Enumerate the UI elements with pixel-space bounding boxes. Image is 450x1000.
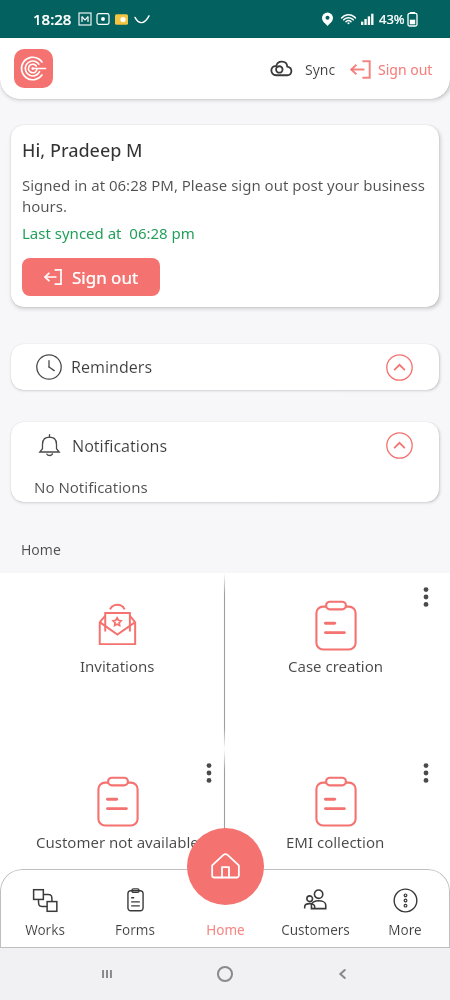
- button[interactable]: More options: [416, 585, 436, 609]
- button[interactable]: More options: [416, 761, 436, 785]
- staticText: Invitations: [80, 656, 155, 676]
- staticText: 43%: [379, 10, 405, 28]
- staticText: 18:28: [33, 9, 72, 29]
- button[interactable]: Sign out: [345, 50, 437, 89]
- staticText: Sync: [305, 60, 336, 79]
- button[interactable]: Home: [187, 828, 264, 905]
- button[interactable]: Collapse: [386, 354, 413, 381]
- button[interactable]: More: [360, 869, 450, 939]
- staticText: EMI collection: [286, 832, 385, 852]
- button[interactable]: Notifications: [11, 422, 439, 502]
- button[interactable]: EMI collection: [225, 749, 450, 925]
- button[interactable]: Customers: [270, 869, 360, 939]
- staticText: Reminders: [71, 356, 153, 378]
- staticText: Home: [21, 540, 61, 559]
- staticText: Works: [25, 921, 65, 939]
- staticText: Notifications: [72, 435, 168, 457]
- staticText: Customer not available: [36, 832, 199, 852]
- staticText: Case creation: [288, 656, 384, 676]
- button[interactable]: Sign out: [22, 258, 160, 296]
- button[interactable]: Collapse: [386, 432, 413, 459]
- button[interactable]: Invitations: [0, 573, 225, 749]
- button[interactable]: Reminders: [11, 344, 439, 390]
- staticText: Sign out: [72, 266, 139, 289]
- button[interactable]: More options: [199, 761, 219, 785]
- button[interactable]: Sync: [265, 49, 340, 89]
- staticText: Sign out: [378, 60, 433, 79]
- button[interactable]: Home: [180, 869, 270, 939]
- staticText: Forms: [115, 921, 155, 939]
- staticText: Hi, Pradeep M: [22, 138, 143, 163]
- button[interactable]: Customer not available: [0, 749, 225, 925]
- button[interactable]: Forms: [90, 869, 180, 939]
- button[interactable]: Works: [0, 869, 90, 939]
- button[interactable]: App logo: [14, 49, 53, 88]
- staticText: Signed in at 06:28 PM, Please sign out p…: [22, 175, 428, 217]
- staticText: Home: [206, 921, 245, 939]
- staticText: Last synced at 06:28 pm: [22, 223, 195, 243]
- staticText: Customers: [281, 921, 350, 939]
- staticText: More: [388, 921, 422, 939]
- staticText: No Notifications: [34, 477, 148, 497]
- button[interactable]: Case creation: [225, 573, 450, 749]
